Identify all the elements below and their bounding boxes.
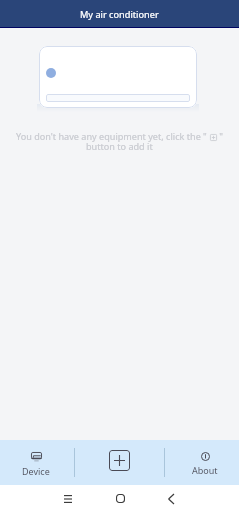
button[interactable]: About bbox=[169, 440, 239, 485]
staticText: button to add it bbox=[86, 140, 153, 152]
button[interactable]: Device bbox=[0, 440, 71, 485]
button[interactable]: Add device bbox=[109, 450, 130, 471]
button[interactable]: Recent apps bbox=[53, 485, 83, 512]
staticText: You don't have any equipment yet, click … bbox=[16, 130, 210, 142]
staticText: My air conditioner bbox=[80, 8, 159, 21]
staticText: Device bbox=[22, 465, 50, 477]
staticText: " bbox=[217, 130, 224, 142]
button[interactable]: Home bbox=[105, 485, 135, 512]
staticText: About bbox=[192, 464, 218, 476]
button[interactable]: Back bbox=[156, 485, 186, 512]
